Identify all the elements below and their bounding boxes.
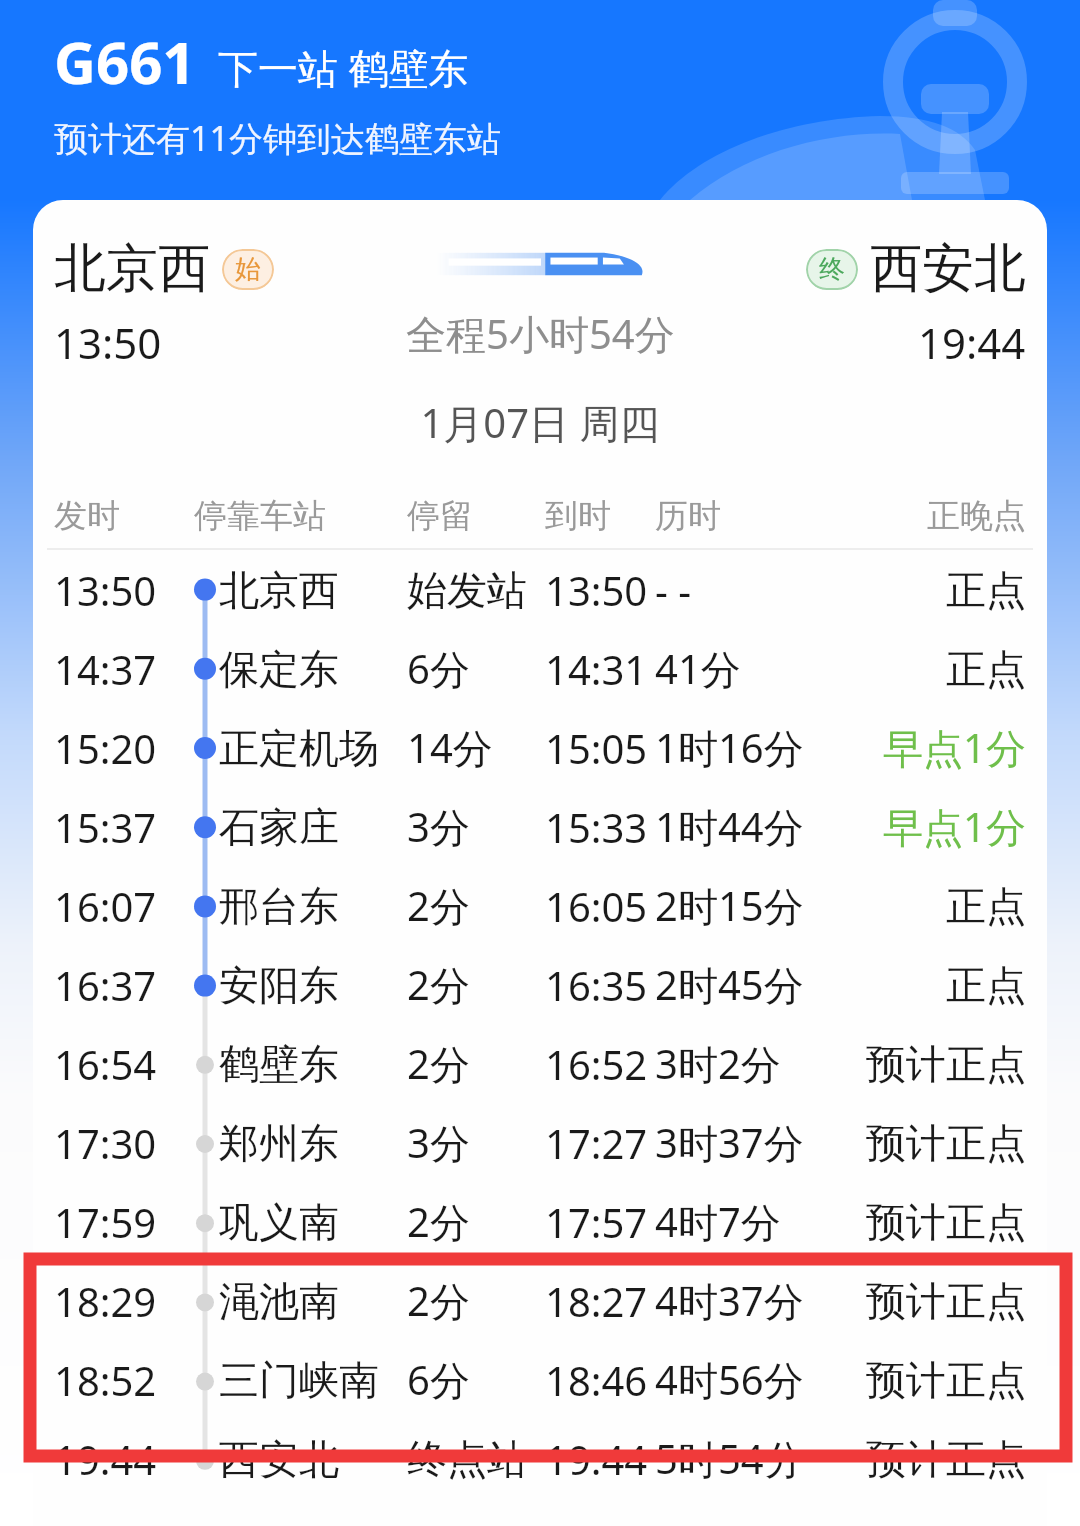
staticText: 15:20 [54, 721, 157, 775]
staticText: 15:33 [545, 800, 648, 854]
staticText: 4时7分 [655, 1194, 781, 1249]
staticText: 16:37 [54, 958, 157, 1012]
staticText: 预计正点 [866, 1434, 1026, 1484]
staticText: 19:44 [918, 314, 1026, 371]
staticText: 正点 [946, 960, 1026, 1010]
staticText: 石家庄 [219, 802, 339, 852]
button[interactable]: 18:52 [33, 1340, 1047, 1419]
staticText: 到时 [545, 495, 611, 537]
button[interactable]: 16:37 [33, 945, 1047, 1024]
staticText: 正定机场 [219, 723, 379, 773]
staticText: 3时37分 [655, 1115, 804, 1170]
staticText: 早点1分 [883, 720, 1026, 775]
staticText: 5时54分 [655, 1431, 804, 1486]
staticText: 1时16分 [655, 720, 804, 775]
staticText: 2分 [407, 878, 470, 933]
staticText: 预计正点 [866, 1355, 1026, 1405]
staticText: 1时44分 [655, 799, 804, 854]
staticText: 安阳东 [219, 960, 339, 1010]
staticText: 全程5小时54分 [406, 306, 675, 361]
staticText: 始 [235, 253, 261, 286]
button[interactable]: 16:07 [33, 866, 1047, 945]
button[interactable]: 19:44 [33, 1419, 1047, 1498]
staticText: 2分 [407, 957, 470, 1012]
staticText: 2分 [407, 1036, 470, 1091]
staticText: 13:50 [545, 563, 648, 617]
staticText: 北京西 [219, 565, 339, 615]
staticText: 17:59 [54, 1195, 157, 1249]
staticText: 西安北 [870, 236, 1026, 302]
staticText: 18:29 [54, 1274, 157, 1328]
staticText: 保定东 [219, 644, 339, 694]
staticText: 2分 [407, 1194, 470, 1249]
button[interactable]: 14:37 [33, 629, 1047, 708]
staticText: 2时45分 [655, 957, 804, 1012]
staticText: 巩义南 [219, 1197, 339, 1247]
staticText: 6分 [407, 641, 470, 696]
staticText: 预计正点 [866, 1276, 1026, 1326]
staticText: 发时 [54, 495, 120, 537]
staticText: 19:44 [54, 1432, 157, 1486]
staticText: 14分 [407, 720, 493, 775]
staticText: 16:05 [545, 879, 648, 933]
staticText: - - [655, 563, 692, 617]
staticText: 16:52 [545, 1037, 648, 1091]
staticText: 3时2分 [655, 1036, 781, 1091]
staticText: 预计正点 [866, 1197, 1026, 1247]
staticText: 预计正点 [866, 1039, 1026, 1089]
staticText: 3分 [407, 1115, 470, 1170]
staticText: 17:57 [545, 1195, 648, 1249]
staticText: 鹤壁东 [219, 1039, 339, 1089]
staticText: 14:31 [545, 642, 648, 696]
staticText: 渑池南 [219, 1276, 339, 1326]
staticText: 终点站 [407, 1434, 527, 1484]
staticText: G661 [54, 22, 196, 101]
button[interactable]: 13:50 [33, 550, 1047, 629]
staticText: 早点1分 [883, 799, 1026, 854]
button[interactable]: 17:59 [33, 1182, 1047, 1261]
staticText: 14:37 [54, 642, 157, 696]
staticText: 三门峡南 [219, 1355, 379, 1405]
staticText: 北京西 [54, 236, 210, 302]
staticText: 16:07 [54, 879, 157, 933]
staticText: 1月07日 周四 [33, 395, 1047, 450]
staticText: 18:52 [54, 1353, 157, 1407]
staticText: 停靠车站 [194, 495, 326, 537]
button[interactable]: 15:37 [33, 787, 1047, 866]
staticText: 正点 [946, 644, 1026, 694]
staticText: 正点 [946, 881, 1026, 931]
staticText: 预计正点 [866, 1118, 1026, 1168]
staticText: 郑州东 [219, 1118, 339, 1168]
staticText: 6分 [407, 1352, 470, 1407]
staticText: 终 [819, 253, 845, 286]
staticText: 41分 [655, 641, 741, 696]
staticText: 始发站 [407, 565, 527, 615]
staticText: 13:50 [54, 314, 162, 371]
staticText: 17:27 [545, 1116, 648, 1170]
staticText: 18:27 [545, 1274, 648, 1328]
staticText: 13:50 [54, 563, 157, 617]
staticText: 西安北 [219, 1434, 339, 1484]
staticText: 15:37 [54, 800, 157, 854]
staticText: 18:46 [545, 1353, 648, 1407]
staticText: 历时 [655, 495, 721, 537]
staticText: 3分 [407, 799, 470, 854]
staticText: 下一站 鹤壁东 [218, 40, 469, 95]
staticText: 16:35 [545, 958, 648, 1012]
button[interactable]: 18:29 [33, 1261, 1047, 1340]
button[interactable]: 16:54 [33, 1024, 1047, 1103]
staticText: 邢台东 [219, 881, 339, 931]
staticText: 16:54 [54, 1037, 157, 1091]
staticText: 17:30 [54, 1116, 157, 1170]
staticText: 4时56分 [655, 1352, 804, 1407]
staticText: 2时15分 [655, 878, 804, 933]
staticText: 预计还有11分钟到达鹤壁东站 [54, 115, 501, 161]
staticText: 2分 [407, 1273, 470, 1328]
staticText: 19:44 [545, 1432, 648, 1486]
button[interactable]: 15:20 [33, 708, 1047, 787]
staticText: 停留 [407, 495, 473, 537]
staticText: 正点 [946, 565, 1026, 615]
staticText: 4时37分 [655, 1273, 804, 1328]
button[interactable]: 17:30 [33, 1103, 1047, 1182]
staticText: 正晚点 [927, 495, 1026, 537]
